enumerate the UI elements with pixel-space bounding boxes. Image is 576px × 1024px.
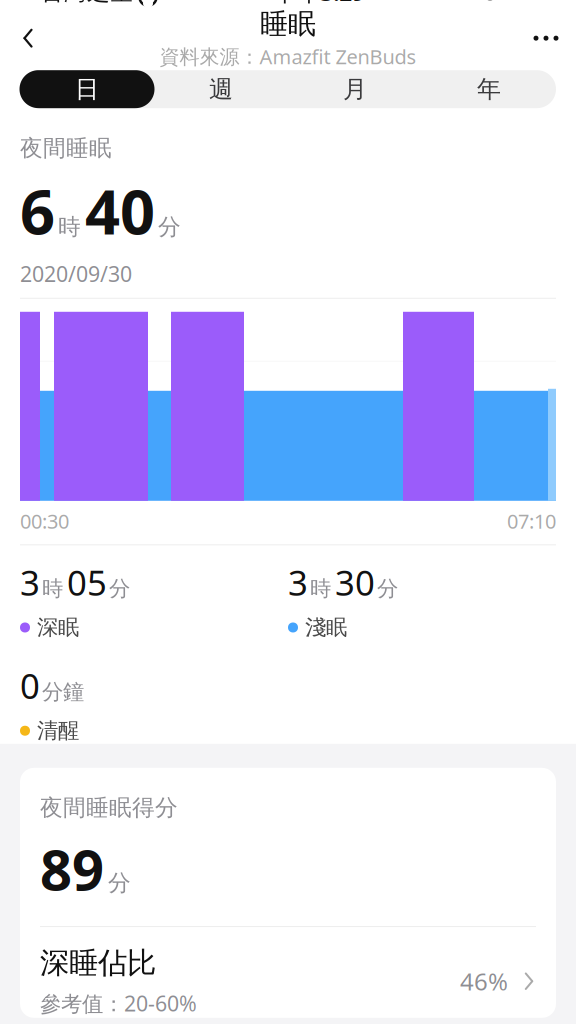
staticText: 深眠 [37, 614, 79, 641]
staticText: 時 [310, 576, 331, 602]
staticText: 參考值：20-60% [40, 989, 197, 1017]
staticText: 夜間睡眠 [20, 134, 112, 162]
staticText: 日 [75, 74, 99, 104]
staticText: 台灣之星 [41, 0, 133, 6]
staticText: 分鐘 [42, 679, 84, 705]
staticText: 07:10 [507, 508, 556, 534]
staticText: 深睡佔比 [40, 945, 156, 981]
staticText: 資料來源：Amazfit ZenBuds [159, 43, 416, 70]
staticText: 46% [460, 965, 508, 997]
staticText: 0 [20, 663, 40, 709]
button[interactable]: 返回 [0, 12, 56, 64]
staticText: 清醒 [37, 718, 79, 744]
staticText: 3 [20, 559, 40, 605]
staticText: 3 [288, 559, 308, 605]
staticText: 週 [209, 74, 233, 104]
staticText: 89 [40, 832, 104, 906]
staticText: 分 [109, 576, 130, 602]
staticText: 6 [20, 170, 55, 251]
button[interactable]: 深睡佔比 [40, 927, 536, 1024]
staticText: 2020/09/30 [20, 259, 132, 288]
staticText: 夜間睡眠得分 [40, 794, 178, 822]
staticText: 睡眠 [260, 7, 316, 41]
button[interactable]: 月 [288, 70, 422, 108]
staticText: 月 [343, 74, 367, 104]
staticText: 時 [58, 213, 81, 241]
staticText: 40 [85, 170, 155, 251]
staticText: 05 [67, 559, 107, 605]
staticText: 分 [108, 869, 131, 897]
staticText: 下午3:29 [274, 0, 365, 7]
staticText: 00:30 [20, 508, 69, 534]
staticText: 分 [158, 213, 181, 241]
staticText: 時 [42, 576, 63, 602]
button[interactable]: 更多選項 [516, 12, 576, 64]
button[interactable]: 日 [20, 70, 154, 108]
staticText: 30 [335, 559, 375, 605]
button[interactable]: 年 [422, 70, 556, 108]
staticText: 淺眠 [305, 614, 347, 641]
staticText: 年 [477, 74, 501, 104]
button[interactable]: 週 [154, 70, 288, 108]
staticText: 分 [377, 576, 398, 602]
